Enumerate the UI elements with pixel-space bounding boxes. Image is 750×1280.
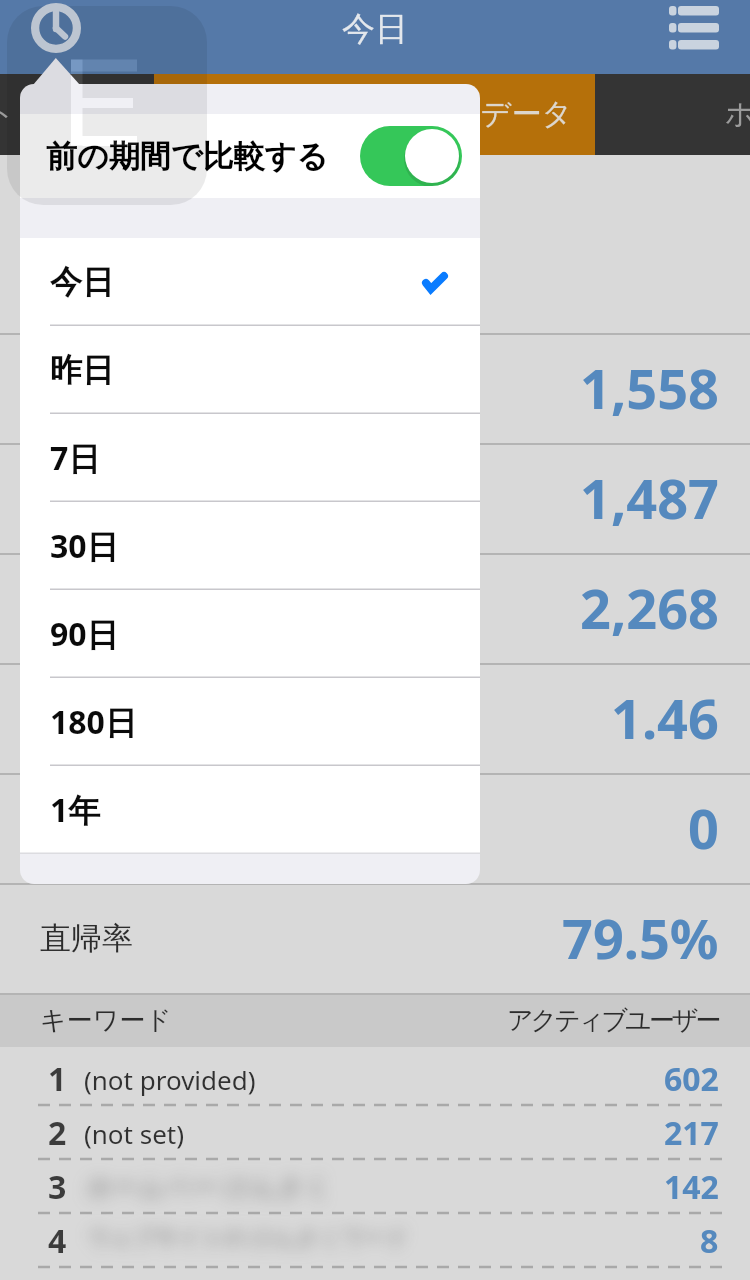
staticText: ページ / セッション (40, 697, 321, 739)
staticText: 平均セッション時間 (40, 809, 323, 848)
staticText: キーワード (40, 1004, 172, 1037)
button[interactable]: マイレポート (0, 74, 154, 155)
staticText: 1,487 (580, 461, 719, 535)
staticText: ユーザー (40, 479, 166, 518)
button[interactable]: 3 (0, 1160, 750, 1214)
staticText: ウェブサイトの けんさくワード (88, 1221, 409, 1251)
button[interactable]: 4 (0, 1214, 750, 1268)
button[interactable]: 昨日 (20, 326, 480, 414)
staticText: ホーム (725, 95, 750, 133)
button[interactable]: ユーザー (0, 443, 750, 553)
staticText: 7日 (50, 436, 101, 480)
staticText: ホームペー けんさく (86, 1168, 332, 1204)
button[interactable]: ページビュー数 (0, 553, 750, 663)
staticText: ページビュー数 (40, 589, 260, 628)
button[interactable]: ホーム (595, 74, 750, 155)
staticText: セッション (40, 369, 199, 408)
button[interactable]: セッション (0, 333, 750, 443)
button[interactable]: 今日 (20, 238, 480, 326)
button[interactable]: List view (655, 0, 733, 60)
button[interactable]: 90日 (20, 590, 480, 678)
staticText: 79.5% (562, 901, 719, 975)
staticText: マイレポート (0, 95, 16, 133)
staticText: ユーザーの分布のデータ (238, 95, 573, 133)
staticText: 0 (688, 791, 719, 865)
button[interactable]: 180日 (20, 678, 480, 766)
staticText: 3 (48, 1165, 67, 1209)
staticText: 今日 (342, 8, 408, 50)
staticText: アクティブユーザー (507, 1004, 719, 1037)
button[interactable]: 1年 (20, 766, 480, 854)
staticText: 1年 (50, 788, 101, 832)
button[interactable]: 7日 (20, 414, 480, 502)
staticText: 180日 (50, 700, 137, 744)
button[interactable]: 平均セッション時間 (0, 773, 750, 883)
button[interactable]: ユーザーの分布のデータ (154, 74, 595, 155)
staticText: 1.46 (611, 681, 719, 755)
staticText: 2,268 (580, 571, 719, 645)
staticText: 142 (664, 1165, 719, 1209)
button[interactable]: Date range (7, 6, 207, 205)
button[interactable]: 前の期間で比較する (20, 114, 480, 198)
staticText: 8 (700, 1219, 719, 1263)
staticText: 4 (48, 1219, 67, 1263)
staticText: 602 (664, 1057, 719, 1101)
button[interactable]: 30日 (20, 502, 480, 590)
staticText: 前の期間で比較する (46, 137, 328, 176)
staticText: 直帰率 (40, 919, 133, 958)
staticText: 90日 (50, 612, 119, 656)
staticText: 昨日 (50, 350, 114, 390)
staticText: 30日 (50, 524, 119, 568)
button[interactable]: 1 (0, 1052, 750, 1106)
staticText: 1,558 (580, 351, 719, 425)
staticText: 217 (664, 1111, 719, 1155)
staticText: (not set) (84, 1116, 185, 1151)
staticText: 1 (48, 1057, 67, 1101)
staticText: 2 (48, 1111, 67, 1155)
button[interactable]: ページ / セッション (0, 663, 750, 773)
staticText: (not provided) (84, 1062, 256, 1097)
staticText: 今日 (50, 262, 114, 302)
button[interactable]: 直帰率 (0, 883, 750, 993)
button[interactable]: 2 (0, 1106, 750, 1160)
